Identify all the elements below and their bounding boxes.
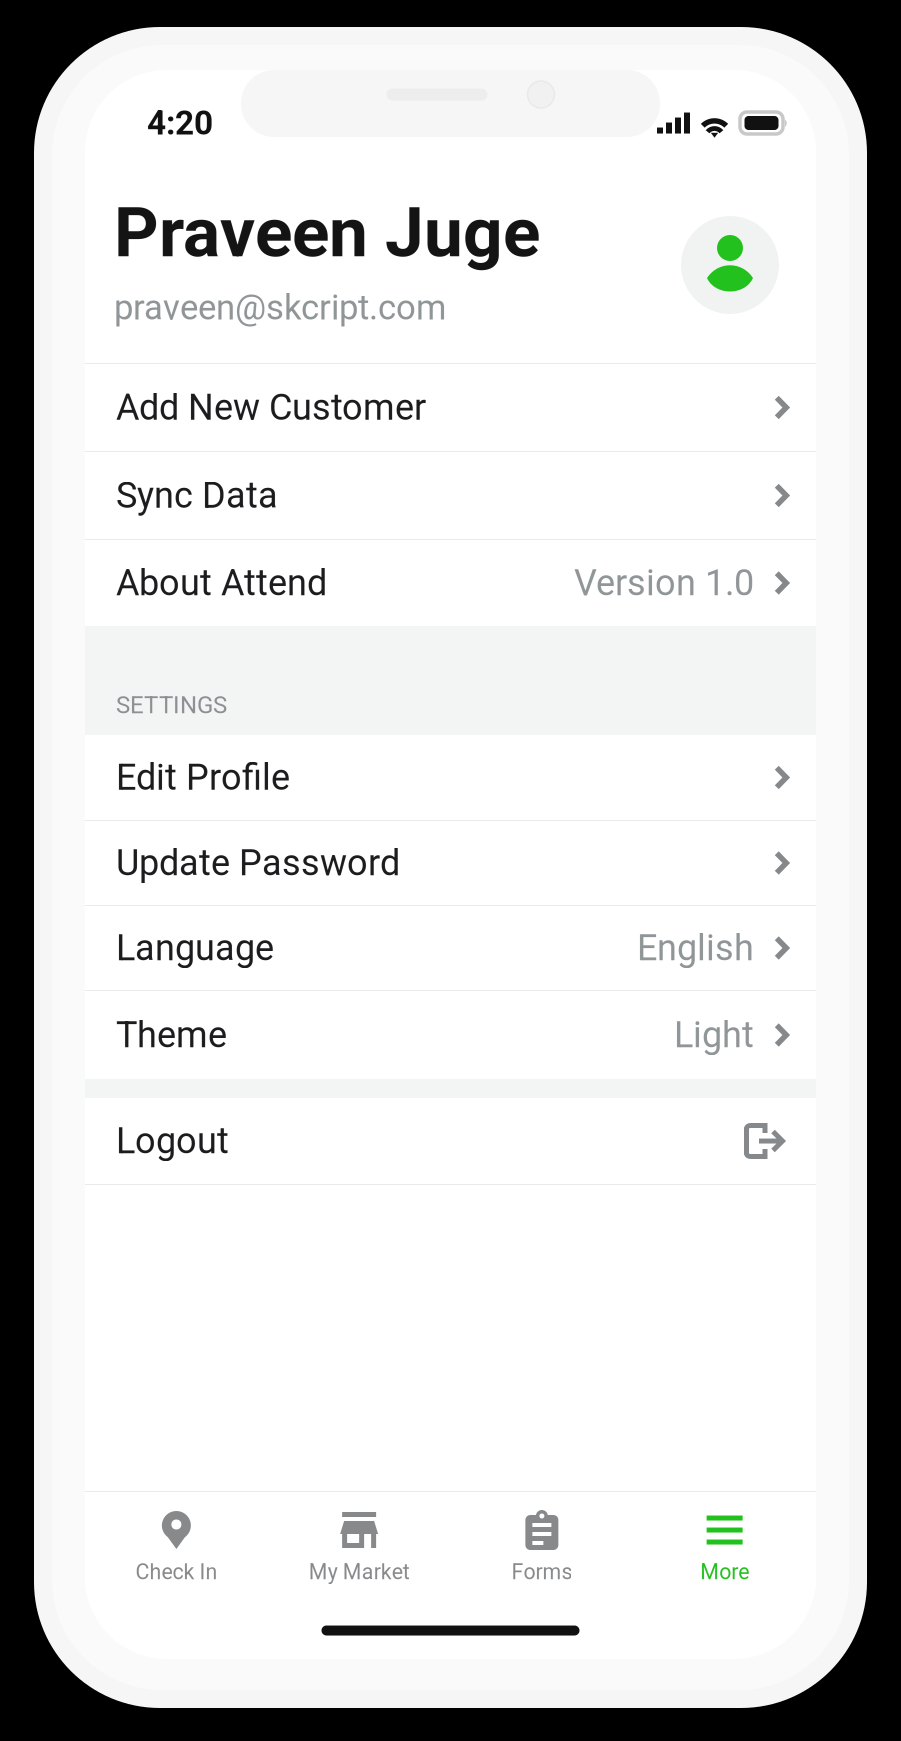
staticText: 4:20: [147, 103, 213, 143]
button[interactable]: Check In: [85, 1499, 268, 1595]
staticText: Version 1.0: [574, 562, 754, 604]
staticText: Update Password: [116, 842, 400, 884]
staticText: Theme: [116, 1014, 227, 1056]
button[interactable]: Sync Data: [85, 452, 816, 540]
button[interactable]: My Market: [268, 1499, 451, 1595]
staticText: Light: [674, 1014, 754, 1056]
button[interactable]: Edit Profile: [85, 735, 816, 821]
button[interactable]: Logout: [85, 1098, 816, 1185]
staticText: English: [637, 927, 754, 969]
staticText: Sync Data: [116, 474, 278, 517]
staticText: Add New Customer: [116, 386, 426, 429]
button[interactable]: Update Password: [85, 821, 816, 906]
staticText: About Attend: [116, 562, 327, 604]
staticText: praveen@skcript.com: [114, 287, 446, 328]
staticText: Logout: [116, 1120, 229, 1162]
staticText: Praveen Juge: [114, 192, 540, 273]
button[interactable]: About Attend: [85, 540, 816, 626]
button[interactable]: Add New Customer: [85, 364, 816, 452]
staticText: My Market: [309, 1559, 410, 1584]
staticText: Edit Profile: [116, 756, 290, 799]
button[interactable]: Theme: [85, 991, 816, 1079]
staticText: Check In: [135, 1559, 217, 1584]
button[interactable]: Forms: [450, 1499, 633, 1595]
staticText: Language: [116, 927, 274, 969]
staticText: More: [700, 1559, 749, 1584]
button[interactable]: More: [633, 1499, 816, 1595]
button[interactable]: Language: [85, 906, 816, 991]
staticText: Forms: [511, 1559, 572, 1584]
staticText: SETTINGS: [116, 691, 227, 719]
